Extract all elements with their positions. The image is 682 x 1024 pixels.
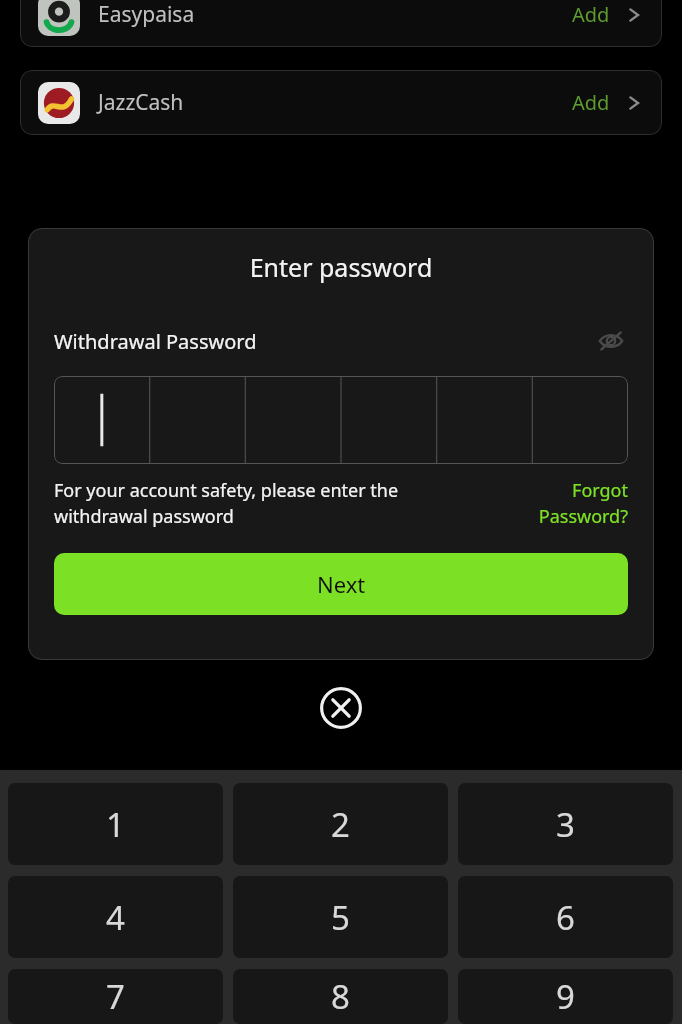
button[interactable]: 3 xyxy=(458,783,673,865)
button[interactable]: 9 xyxy=(458,969,673,1024)
staticText: 3 xyxy=(556,802,575,847)
staticText: 2 xyxy=(331,802,350,847)
staticText: 7 xyxy=(106,974,125,1019)
staticText: Easypaisa xyxy=(98,0,195,29)
button[interactable]: Show password xyxy=(594,324,628,358)
staticText: Add xyxy=(572,89,610,116)
staticText: 6 xyxy=(556,895,575,940)
button[interactable]: Easypaisa xyxy=(20,0,662,47)
button[interactable]: Next xyxy=(54,553,628,615)
button[interactable]: Close xyxy=(317,684,365,732)
button[interactable]: 4 xyxy=(8,876,223,958)
staticText: JazzCash xyxy=(98,88,184,117)
button[interactable]: 1 xyxy=(8,783,223,865)
staticText: 1 xyxy=(106,802,125,847)
staticText: For your account safety, please enter th… xyxy=(54,478,464,529)
button[interactable]: 7 xyxy=(8,969,223,1024)
staticText: 5 xyxy=(331,895,350,940)
staticText: Withdrawal Password xyxy=(54,328,257,355)
staticText: Forgot Password? xyxy=(516,478,628,529)
button[interactable]: 8 xyxy=(233,969,448,1024)
button[interactable]: 2 xyxy=(233,783,448,865)
staticText: 8 xyxy=(331,974,350,1019)
button[interactable]: 5 xyxy=(233,876,448,958)
staticText: 9 xyxy=(556,974,575,1019)
staticText: Enter password xyxy=(28,250,654,284)
staticText: 4 xyxy=(106,895,125,940)
button[interactable]: JazzCash xyxy=(20,70,662,135)
staticText: Next xyxy=(317,569,366,599)
button[interactable]: Forgot Password? xyxy=(516,478,628,529)
button[interactable]: 6 xyxy=(458,876,673,958)
button[interactable] xyxy=(54,376,628,464)
staticText: Add xyxy=(572,1,610,28)
